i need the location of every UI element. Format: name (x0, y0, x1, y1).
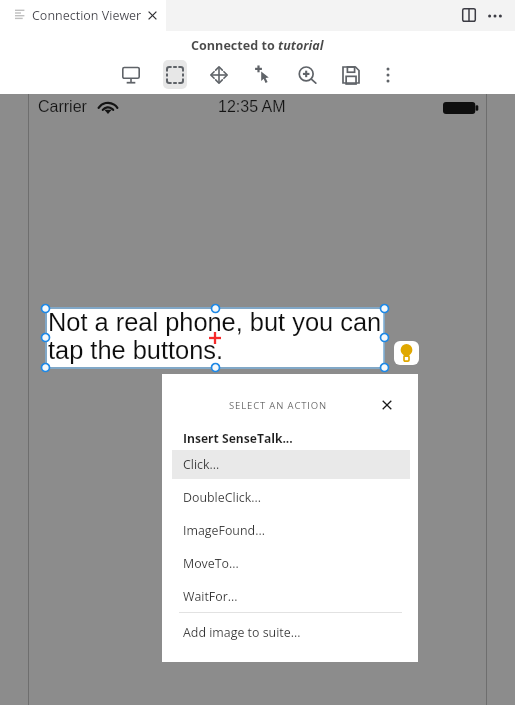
staticText: tap the buttons. (48, 336, 224, 364)
staticText: MoveTo... (183, 555, 239, 572)
button[interactable]: Move (207, 63, 231, 87)
button[interactable]: More options (486, 7, 504, 25)
button[interactable]: Insert SenseTalk... (172, 425, 410, 450)
button[interactable]: Connection Viewer (0, 0, 166, 31)
staticText: Not a real phone, but you can (48, 308, 382, 336)
button[interactable]: Toggle split pane (461, 7, 476, 22)
button[interactable]: WaitFor... (172, 582, 410, 611)
staticText: Click... (183, 456, 220, 473)
button[interactable]: More actions (376, 63, 400, 87)
button[interactable]: Capture region (163, 60, 187, 89)
button[interactable]: Screen (119, 63, 143, 87)
button[interactable]: Close menu (376, 394, 398, 416)
button[interactable]: Add image to suite... (172, 618, 410, 647)
staticText: DoubleClick... (183, 489, 261, 506)
button[interactable]: Hint (394, 341, 419, 365)
button[interactable]: Zoom (295, 63, 319, 87)
button[interactable]: Click point (251, 63, 275, 87)
staticText: Carrier (38, 98, 87, 116)
button[interactable]: Click... (172, 450, 410, 479)
staticText: ImageFound... (183, 522, 265, 539)
staticText: Add image to suite... (183, 624, 301, 641)
staticText: tutorial (278, 37, 324, 54)
button[interactable]: Save (339, 63, 363, 87)
staticText: SELECT AN ACTION (229, 399, 328, 412)
button[interactable]: MoveTo... (172, 549, 410, 578)
button[interactable]: DoubleClick... (172, 483, 410, 512)
staticText: WaitFor... (183, 588, 238, 605)
staticText: Connected to (191, 37, 278, 54)
button[interactable]: ImageFound... (172, 516, 410, 545)
button[interactable]: Close tab (143, 6, 161, 24)
staticText: Insert SenseTalk... (183, 430, 293, 446)
staticText: 12:35 AM (218, 98, 286, 116)
staticText: Connection Viewer (32, 7, 142, 24)
